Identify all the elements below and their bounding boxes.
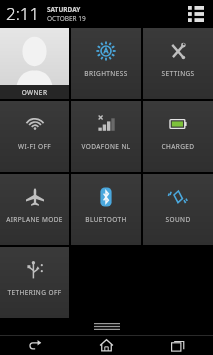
staticText: 2:11	[6, 2, 40, 25]
staticText: SOUND	[143, 215, 213, 224]
button[interactable]: BLUETOOTH	[71, 174, 141, 245]
staticText: BRIGHTNESS	[71, 69, 141, 78]
staticText: VODAFONE NL	[71, 142, 141, 151]
button[interactable]: Collapse quick settings	[0, 318, 213, 335]
button[interactable]: Owner profile	[0, 28, 69, 99]
button[interactable]: AIRPLANE MODE	[0, 174, 69, 245]
button[interactable]: VODAFONE NL	[71, 101, 141, 172]
button[interactable]: Back	[0, 336, 71, 355]
staticText: SETTINGS	[143, 69, 213, 78]
button[interactable]: Recents	[142, 336, 213, 355]
staticText: SATURDAY	[47, 5, 81, 14]
staticText: BLUETOOTH	[71, 215, 141, 224]
button[interactable]: Quick settings list	[185, 3, 207, 25]
button[interactable]: CHARGED	[143, 101, 213, 172]
button[interactable]: SOUND	[143, 174, 213, 245]
staticText: OCTOBER 19	[47, 14, 86, 23]
staticText: AIRPLANE MODE	[0, 215, 69, 224]
staticText: TETHERING OFF	[0, 288, 69, 297]
staticText: CHARGED	[143, 142, 213, 151]
staticText: WI-FI OFF	[0, 142, 69, 151]
button[interactable]: BRIGHTNESS	[71, 28, 141, 99]
staticText: OWNER	[0, 88, 69, 97]
button[interactable]: Home	[71, 336, 142, 355]
button[interactable]: SETTINGS	[143, 28, 213, 99]
button[interactable]: WI-FI OFF	[0, 101, 69, 172]
button[interactable]: TETHERING OFF	[0, 247, 69, 318]
